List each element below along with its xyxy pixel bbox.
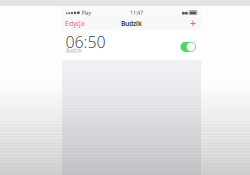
staticText: Edycja xyxy=(65,19,85,28)
staticText: Budzik xyxy=(121,19,142,28)
staticText: ●● xyxy=(182,10,188,15)
staticText: 06:50 xyxy=(65,31,105,52)
staticText: Budzik xyxy=(66,47,82,54)
staticText: Play xyxy=(81,9,91,16)
button[interactable]: Edycja xyxy=(64,17,86,30)
staticText: 11:47 xyxy=(130,9,143,16)
button[interactable]: Add alarm xyxy=(188,17,198,30)
button[interactable]: 06:50 xyxy=(62,30,201,61)
button[interactable]: Alarm enabled xyxy=(180,42,196,52)
